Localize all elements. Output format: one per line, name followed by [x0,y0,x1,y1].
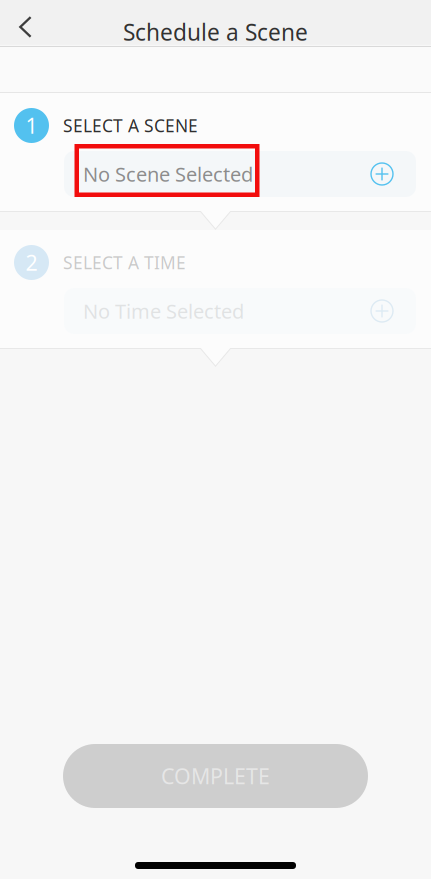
staticText: SELECT A TIME [63,251,186,274]
staticText: Schedule a Scene [123,17,308,47]
staticText: 1 [25,111,37,140]
button[interactable]: No Time Selected [64,288,416,334]
staticText: No Time Selected [83,298,244,324]
button[interactable]: COMPLETE [63,744,368,808]
button[interactable]: Back [0,0,46,45]
staticText: 2 [25,248,37,277]
staticText: COMPLETE [161,762,270,790]
button[interactable]: No Scene Selected [64,151,416,197]
staticText: No Scene Selected [83,161,253,187]
staticText: SELECT A SCENE [63,114,198,137]
